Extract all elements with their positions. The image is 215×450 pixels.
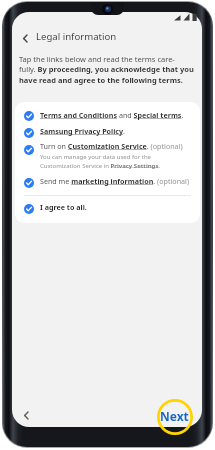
staticText: Tap the links below and read the terms c… — [19, 54, 203, 86]
staticText: I agree to all. — [40, 202, 87, 212]
button[interactable] — [17, 200, 197, 216]
staticText: Samsung Privacy Policy. — [40, 126, 125, 136]
button[interactable] — [17, 174, 197, 190]
button[interactable] — [17, 142, 197, 170]
button[interactable]: Next — [157, 399, 193, 435]
staticText: Next — [160, 408, 189, 424]
button[interactable] — [17, 125, 197, 141]
staticText: You can manage your data used for the Cu… — [40, 153, 200, 169]
button[interactable]: Navigate up — [15, 28, 35, 48]
button[interactable] — [17, 108, 197, 124]
staticText: Terms and Conditions and Special terms. — [40, 110, 184, 120]
staticText: Turn on Customization Service. (optional… — [40, 141, 183, 151]
staticText: Legal information — [36, 30, 117, 43]
button[interactable]: Back — [15, 405, 36, 426]
staticText: Send me marketing information. (optional… — [40, 176, 190, 186]
